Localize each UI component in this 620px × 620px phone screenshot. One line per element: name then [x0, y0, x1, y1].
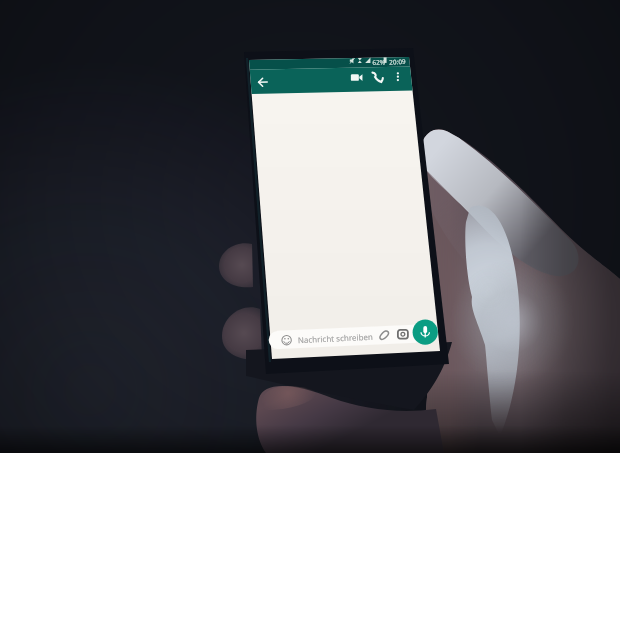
button[interactable]: Photo of a hand holding a phone with a c…: [0, 0, 620, 453]
